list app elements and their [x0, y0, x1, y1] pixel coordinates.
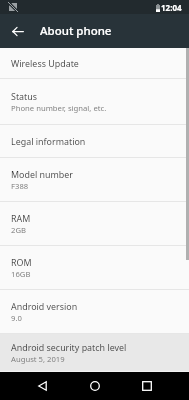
button[interactable]: Status — [0, 79, 189, 125]
staticText: ROM — [11, 256, 32, 268]
staticText: Legal information — [11, 135, 86, 147]
staticText: 2GB — [11, 225, 26, 235]
staticText: August 5, 2019 — [11, 354, 65, 364]
staticText: 16GB — [11, 269, 31, 279]
staticText: Status — [11, 90, 38, 102]
button[interactable]: Back — [5, 18, 31, 44]
staticText: 9.0 — [11, 313, 22, 323]
staticText: Model number — [11, 168, 73, 180]
staticText: About phone — [40, 23, 112, 39]
button[interactable]: Wireless Update — [0, 48, 189, 79]
button[interactable]: Android security patch level — [0, 334, 189, 372]
staticText: Android version — [11, 300, 78, 312]
staticText: 12:04 — [161, 2, 182, 13]
staticText: Android security patch level — [11, 341, 127, 353]
button[interactable]: ROM — [0, 246, 189, 290]
button[interactable]: Legal information — [0, 125, 189, 158]
staticText: Wireless Update — [11, 57, 79, 69]
staticText: Phone number, signal, etc. — [11, 103, 107, 113]
button[interactable]: Home — [81, 372, 109, 400]
button[interactable]: Android version — [0, 290, 189, 334]
button[interactable]: RAM — [0, 202, 189, 246]
staticText: RAM — [11, 212, 31, 224]
button[interactable]: Back — [28, 372, 56, 400]
staticText: F388 — [11, 181, 29, 191]
button[interactable]: Recents — [133, 372, 161, 400]
button[interactable]: Model number — [0, 158, 189, 202]
